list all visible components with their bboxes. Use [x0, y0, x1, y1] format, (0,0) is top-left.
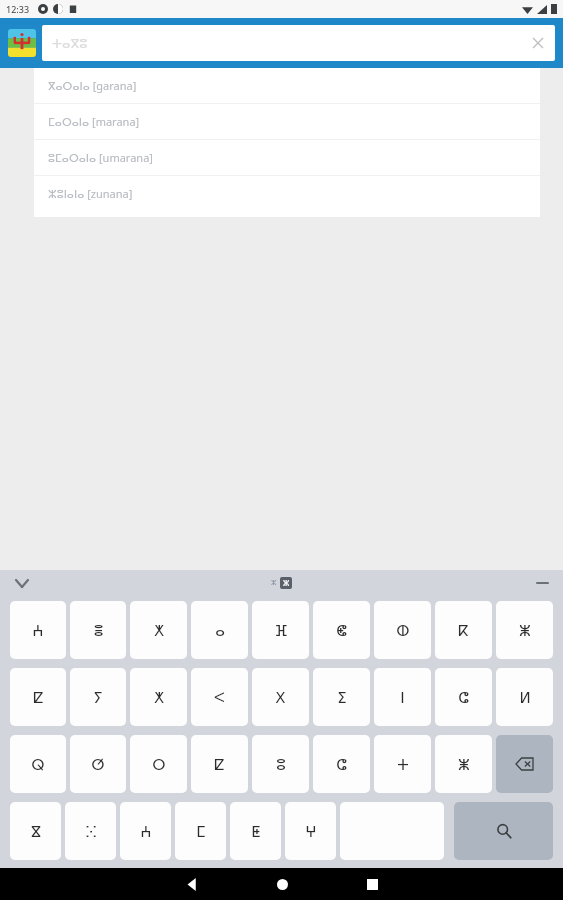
button[interactable]: ⵢ	[70, 668, 126, 726]
staticText: ⵣ	[271, 579, 277, 587]
button[interactable]: ⵎ	[175, 802, 226, 860]
button[interactable]: ⵎⴰⵔⴰⵏⴰ [marana]	[34, 104, 540, 139]
button[interactable]: ⵅ	[130, 601, 187, 659]
button[interactable]: ⵥ	[435, 735, 492, 793]
button[interactable]: ⵛ	[435, 668, 492, 726]
button[interactable]: Backspace	[496, 735, 553, 793]
staticText: ⵢ	[93, 689, 103, 706]
button[interactable]: ⵍ	[496, 668, 553, 726]
button[interactable]: ⵔ	[130, 735, 187, 793]
staticText: ⵔ	[152, 756, 166, 773]
staticText: ⴻ	[93, 622, 104, 639]
staticText: ⵘ	[85, 823, 97, 840]
button[interactable]: ⵉ	[313, 668, 370, 726]
button[interactable]: Search	[454, 802, 553, 860]
button[interactable]: ⴰ	[191, 601, 248, 659]
staticText: ⵇ	[214, 756, 225, 773]
button[interactable]: ⵅ	[130, 668, 187, 726]
staticText: ⵚ	[91, 756, 105, 773]
button[interactable]: ⵘ	[65, 802, 116, 860]
button[interactable]: ⵦ	[191, 668, 248, 726]
staticText: ⵛ	[336, 756, 347, 773]
button[interactable]: Home	[252, 868, 312, 900]
button[interactable]: Clear	[527, 32, 549, 54]
staticText: ⵎ	[196, 823, 206, 840]
staticText: ⴼ	[274, 622, 288, 639]
button[interactable]: ⵀ	[374, 601, 431, 659]
button[interactable]: ⴻ	[70, 601, 126, 659]
button[interactable]: ⵞ	[313, 601, 370, 659]
staticText: ⵉ	[337, 689, 347, 706]
staticText: ⴵ	[31, 823, 41, 840]
staticText: ⵟ	[251, 823, 261, 840]
staticText: ⵍ	[519, 689, 531, 706]
staticText: ⵇ	[33, 689, 44, 706]
staticText: ⵀ	[396, 622, 410, 639]
staticText: ⵜⴰⴳⵓ	[52, 36, 88, 51]
button[interactable]: Hide keyboard	[10, 571, 34, 595]
button[interactable]: ⵇ	[10, 668, 66, 726]
button[interactable]: ⵜ	[374, 735, 431, 793]
button[interactable]: Minimize	[531, 572, 553, 594]
staticText: ⴳⴰⵔⴰⵏⴰ [garana]	[48, 78, 137, 93]
button[interactable]: ⵣⵓⵏⴰⵏⴰ [zunana]	[34, 176, 540, 211]
button[interactable]: ⵕ	[10, 735, 66, 793]
button[interactable]: ⴽ	[435, 601, 492, 659]
button[interactable]: Recents	[342, 868, 402, 900]
staticText: ⴰ	[215, 622, 225, 639]
button[interactable]: Back	[162, 868, 222, 900]
staticText: ⵥ	[519, 622, 531, 639]
staticText: ⵄ	[32, 622, 44, 639]
button[interactable]: ⵄ	[10, 601, 66, 659]
staticText: ⵣ	[283, 579, 290, 588]
staticText: ⵓ	[276, 756, 286, 773]
staticText: ⵅ	[154, 689, 164, 706]
button[interactable]: ⵥ	[496, 601, 553, 659]
staticText: ⵥ	[458, 756, 470, 773]
staticText: ⵎⴰⵔⴰⵏⴰ [marana]	[48, 114, 140, 129]
staticText: ⵦ	[214, 690, 225, 705]
staticText: ⵛ	[458, 689, 469, 706]
button[interactable]: ⵛ	[313, 735, 370, 793]
staticText: ⵅ	[154, 622, 164, 639]
button[interactable]: App icon	[8, 29, 36, 57]
button[interactable]: ⵄ	[120, 802, 171, 860]
button[interactable]: ⵓ	[252, 735, 309, 793]
button[interactable]: ⴵ	[10, 802, 61, 860]
staticText: ⵣⵓⵏⴰⵏⴰ [zunana]	[48, 186, 133, 201]
button[interactable]: ⵏ	[374, 668, 431, 726]
staticText: ⵕ	[31, 756, 45, 773]
staticText: ⵜ	[397, 756, 409, 773]
button[interactable]: ⵓⵎⴰⵔⴰⵏⴰ [umarana]	[34, 140, 540, 175]
button[interactable]: ⴳⴰⵔⴰⵏⴰ [garana]	[34, 68, 540, 103]
button[interactable]: ⵚ	[70, 735, 126, 793]
button[interactable]: ⵝ	[252, 668, 309, 726]
button[interactable]: ⵇ	[191, 735, 248, 793]
staticText: ⵄ	[140, 823, 152, 840]
staticText: ⵏ	[400, 689, 405, 706]
button[interactable]: ⴼ	[252, 601, 309, 659]
button[interactable]: ⵖ	[285, 802, 336, 860]
staticText: ⵝ	[275, 689, 286, 706]
staticText: 12:33	[6, 3, 30, 15]
staticText: ⵖ	[305, 823, 317, 840]
staticText: ⴽ	[458, 622, 469, 639]
staticText: ⵞ	[336, 622, 347, 639]
staticText: ⵓⵎⴰⵔⴰⵏⴰ [umarana]	[48, 150, 153, 165]
button[interactable]: ⵟ	[230, 802, 281, 860]
button[interactable]: ⵜⴰⴳⵓ	[42, 25, 555, 61]
